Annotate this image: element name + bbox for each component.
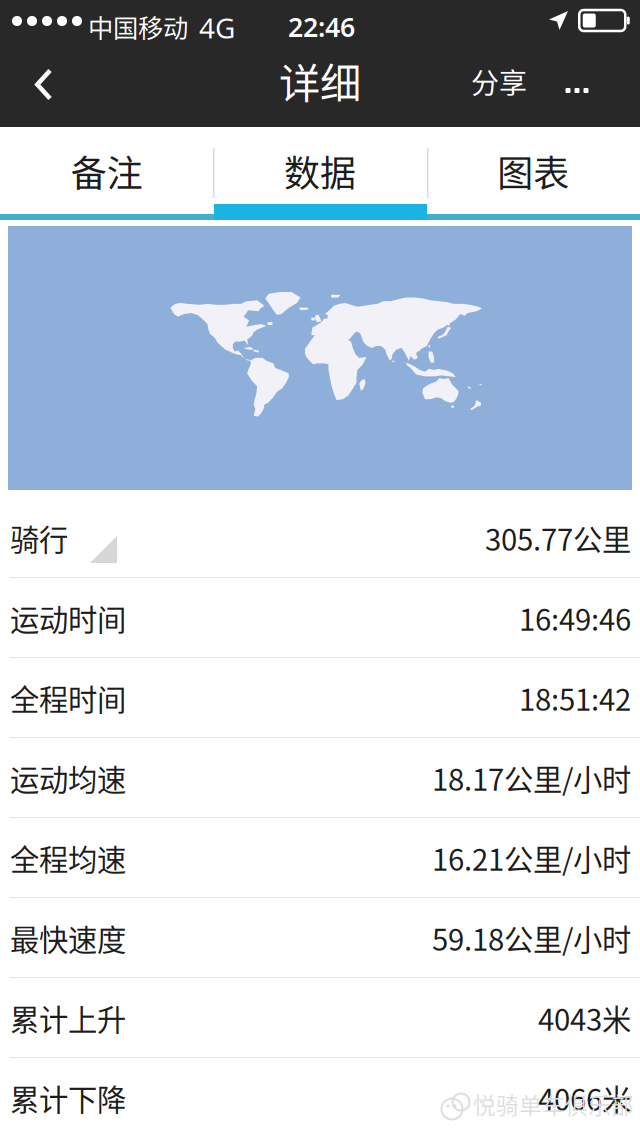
staticText: 数据 [284,145,356,197]
button[interactable]: 备注 [0,127,213,215]
staticText: 18:51:42 [519,677,631,719]
button[interactable]: 累计下降 [0,1058,640,1136]
staticText: 59.18公里/小时 [432,917,631,959]
button[interactable]: 累计上升 [0,978,640,1058]
button[interactable]: 返回 [12,42,76,127]
button[interactable]: 骑行 [0,498,640,578]
button[interactable]: 图表 [427,127,640,215]
staticText: 运动时间 [10,597,126,639]
staticText: 悦骑单车俱乐部 [473,1088,634,1120]
staticText: 4066米 [538,1077,631,1119]
staticText: 备注 [71,145,143,197]
button[interactable]: 最快速度 [0,898,640,978]
button[interactable]: 更多 [545,48,609,133]
button[interactable]: 运动时间 [0,578,640,658]
staticText: 全程均速 [10,837,126,879]
staticText: 运动均速 [10,757,126,799]
staticText: 累计上升 [10,997,126,1039]
staticText: 18.17公里/小时 [432,757,631,799]
staticText: 详细 [279,51,361,110]
staticText: 4G [199,9,235,46]
staticText: 22:46 [288,9,355,44]
staticText: 图表 [497,145,569,197]
staticText: 中国移动 [88,8,188,45]
staticText: 分享 [471,61,527,102]
staticText: 16:49:46 [519,597,631,639]
staticText: 最快速度 [10,917,126,959]
staticText: 骑行 [10,517,68,559]
button[interactable]: 全程时间 [0,658,640,738]
button[interactable]: 分享 [457,39,541,124]
button[interactable]: 数据 [213,127,427,215]
staticText: 305.77公里 [485,517,631,559]
button[interactable]: 运动均速 [0,738,640,818]
staticText: 4043米 [538,997,631,1039]
staticText: 全程时间 [10,677,126,719]
staticText: 累计下降 [10,1077,126,1119]
button[interactable]: 全程均速 [0,818,640,898]
staticText: 16.21公里/小时 [432,837,631,879]
